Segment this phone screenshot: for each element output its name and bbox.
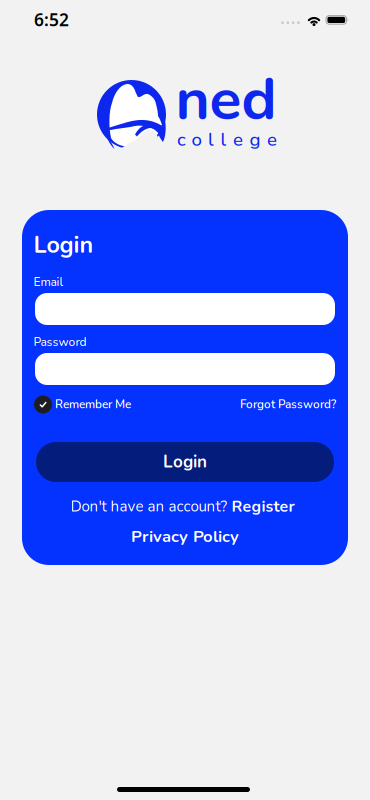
staticText: college [177,127,277,152]
button[interactable]: Password [35,353,335,385]
staticText: ned [175,59,276,139]
staticText: Login [163,450,207,474]
staticText: Forgot Password? [240,396,336,412]
button[interactable]: Email [35,293,335,325]
staticText: Login [33,229,93,261]
staticText: Password [33,334,86,350]
staticText: Don't have an account? [70,496,227,517]
button[interactable]: Forgot Password? [240,396,336,412]
staticText: 6:52 [34,8,69,31]
staticText: Remember Me [55,396,131,412]
button[interactable]: Privacy Policy [131,525,239,548]
button[interactable]: Register [231,496,294,517]
staticText: Register [231,496,294,517]
button[interactable]: Remember Me [34,395,131,413]
staticText: Privacy Policy [131,525,239,548]
button[interactable]: Login [36,442,334,482]
staticText: Email [33,274,63,290]
